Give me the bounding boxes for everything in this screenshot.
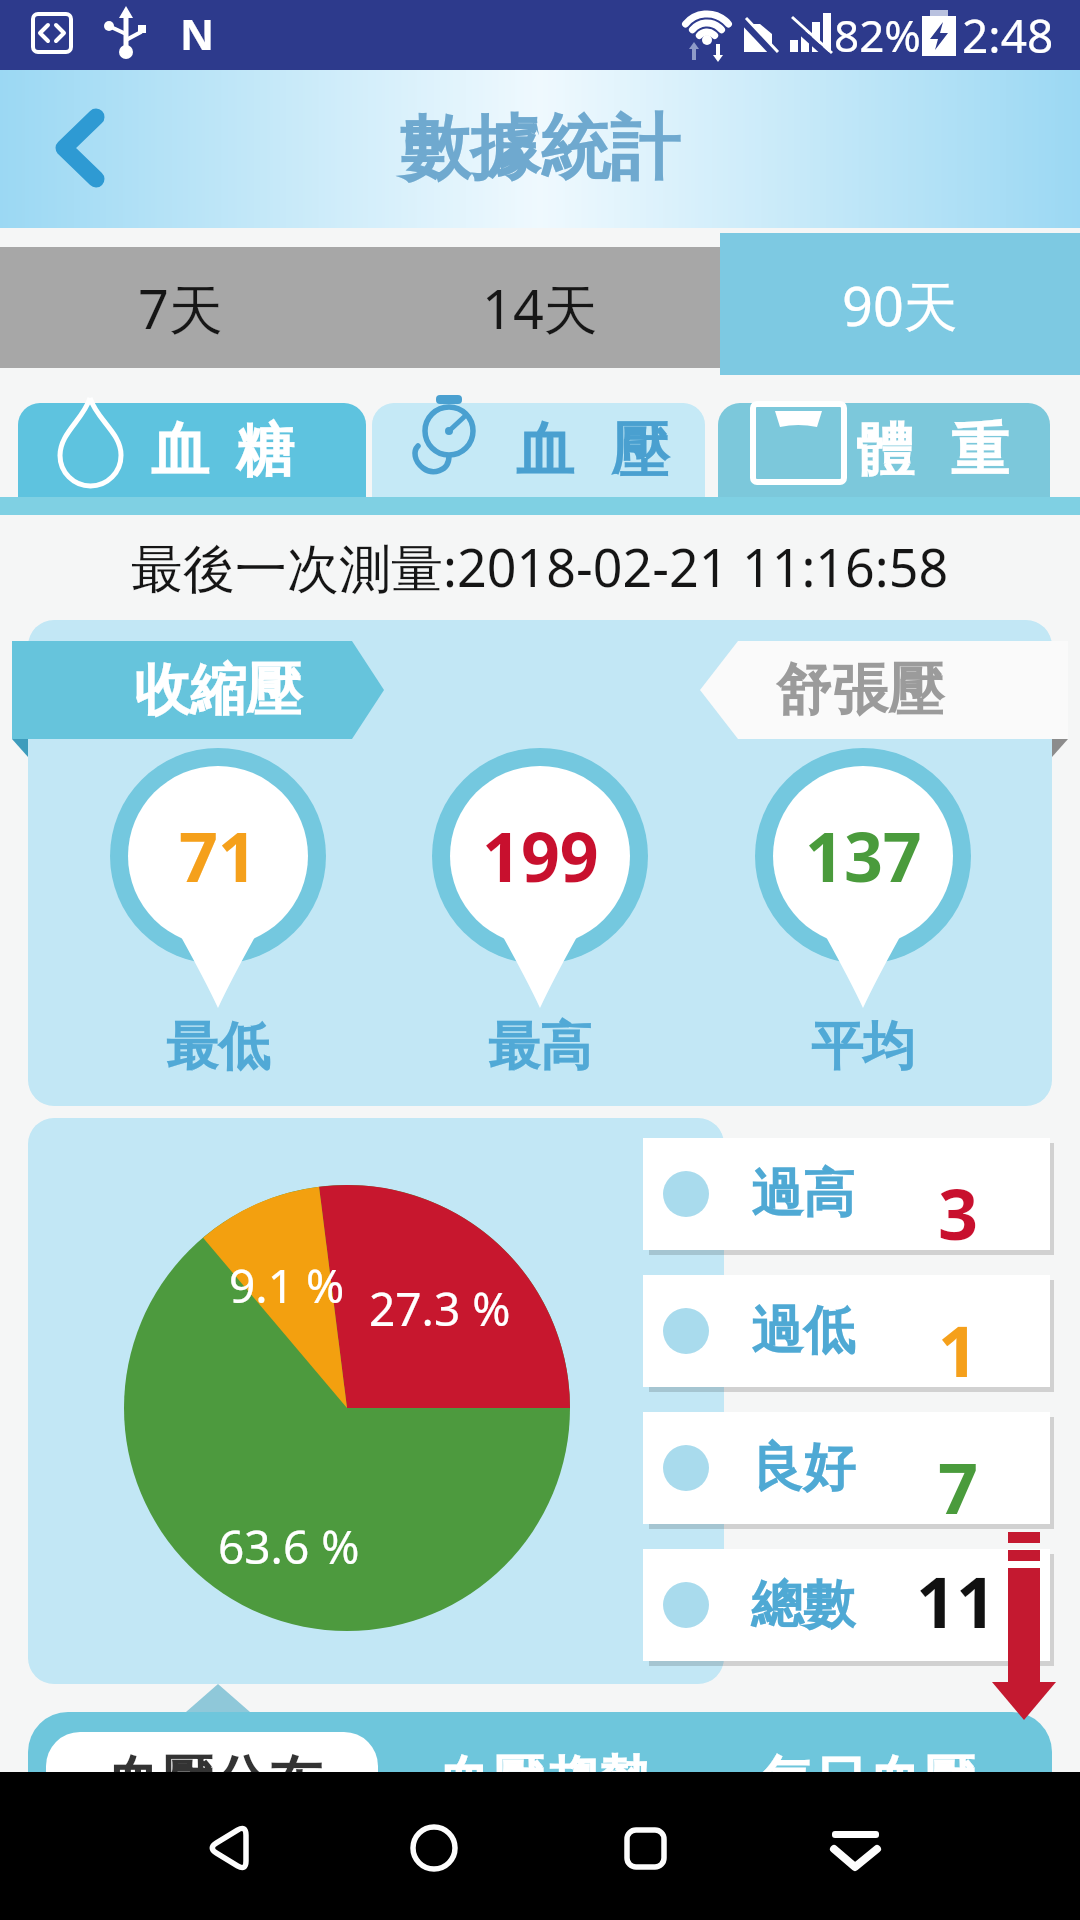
- staticText: 最後一次測量:2018-02-21 11:16:58: [131, 531, 949, 602]
- staticText: 1: [938, 1302, 979, 1397]
- button[interactable]: [20, 100, 140, 200]
- staticText: 糖: [236, 414, 294, 487]
- staticText: 14天: [482, 271, 598, 345]
- staticText: 血: [151, 414, 209, 487]
- staticText: 體: [856, 414, 914, 487]
- button[interactable]: [420, 1740, 680, 1840]
- staticText: 舒張壓: [776, 655, 944, 726]
- staticText: 過高: [751, 1161, 855, 1227]
- button[interactable]: [360, 247, 720, 368]
- button[interactable]: [0, 247, 360, 368]
- staticText: 過低: [751, 1298, 855, 1364]
- staticText: 最低: [166, 1014, 270, 1080]
- staticText: 血壓趨勢: [437, 1748, 653, 1816]
- button[interactable]: [718, 403, 1050, 497]
- staticText: 2:48: [962, 4, 1054, 67]
- staticText: 血壓分布: [106, 1748, 322, 1816]
- button[interactable]: [18, 403, 366, 497]
- staticText: 重: [951, 414, 1009, 487]
- button[interactable]: [160, 1790, 300, 1910]
- staticText: 9.1 %: [229, 1254, 345, 1317]
- staticText: 7: [938, 1439, 979, 1534]
- button[interactable]: [740, 1740, 1000, 1840]
- staticText: 總數: [751, 1572, 855, 1638]
- staticText: 壓: [611, 414, 669, 487]
- staticText: 最高: [488, 1014, 592, 1080]
- staticText: 收縮壓: [134, 655, 302, 726]
- staticText: 每日血壓: [760, 1748, 976, 1816]
- button[interactable]: [46, 1732, 378, 1882]
- button[interactable]: [370, 1790, 510, 1910]
- staticText: 63.6 %: [218, 1515, 360, 1578]
- staticText: 199: [482, 809, 599, 902]
- button[interactable]: [720, 233, 1080, 375]
- staticText: 71: [179, 809, 257, 902]
- staticText: 11: [916, 1553, 997, 1648]
- staticText: 137: [805, 809, 922, 902]
- staticText: 82%: [834, 5, 921, 65]
- button[interactable]: [372, 403, 705, 497]
- staticText: 27.3 %: [369, 1277, 511, 1340]
- staticText: 數據統計: [400, 105, 680, 193]
- staticText: 7天: [138, 271, 223, 345]
- staticText: 90天: [842, 268, 958, 342]
- button[interactable]: [580, 1790, 720, 1910]
- staticText: 平均: [811, 1014, 915, 1080]
- staticText: 3: [938, 1165, 979, 1260]
- staticText: 血: [516, 414, 574, 487]
- staticText: 良好: [751, 1435, 855, 1501]
- button[interactable]: [790, 1790, 930, 1910]
- staticText: N: [180, 5, 215, 62]
